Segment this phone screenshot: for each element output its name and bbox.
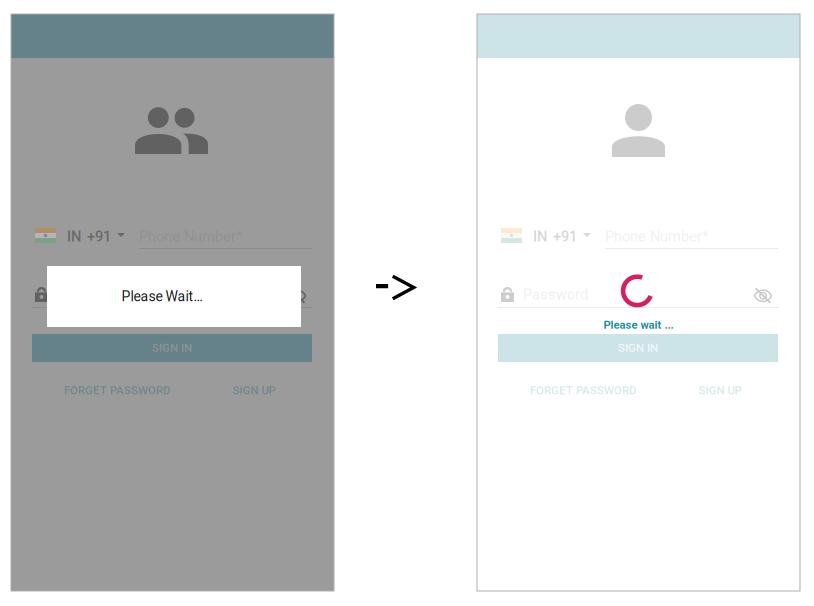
- staticText: FORGET PASSWORD: [64, 384, 170, 397]
- staticText: IN: [533, 228, 547, 245]
- button[interactable]: SIGN UP: [477, 14, 800, 591]
- staticText: +91: [87, 228, 111, 245]
- button[interactable]: FORGET PASSWORD: [11, 14, 334, 591]
- button[interactable]: SIGN UP: [11, 14, 334, 591]
- staticText: Phone Number*: [605, 228, 708, 245]
- staticText: Password: [523, 286, 588, 303]
- button[interactable]: SIGN IN: [11, 14, 334, 591]
- staticText: +91: [553, 228, 577, 245]
- staticText: SIGN UP: [232, 384, 275, 397]
- staticText: SIGN IN: [152, 341, 192, 355]
- button[interactable]: IN: [11, 14, 334, 591]
- staticText: IN: [67, 228, 81, 245]
- staticText: FORGET PASSWORD: [530, 384, 636, 397]
- button[interactable]: SIGN IN: [477, 14, 800, 591]
- button[interactable]: FORGET PASSWORD: [477, 14, 800, 591]
- staticText: Please wait ...: [603, 318, 673, 332]
- staticText: Phone Number*: [139, 228, 242, 245]
- button[interactable]: IN: [477, 14, 800, 591]
- staticText: SIGN UP: [698, 384, 741, 397]
- staticText: Please Wait…: [121, 288, 202, 305]
- staticText: SIGN IN: [618, 341, 658, 355]
